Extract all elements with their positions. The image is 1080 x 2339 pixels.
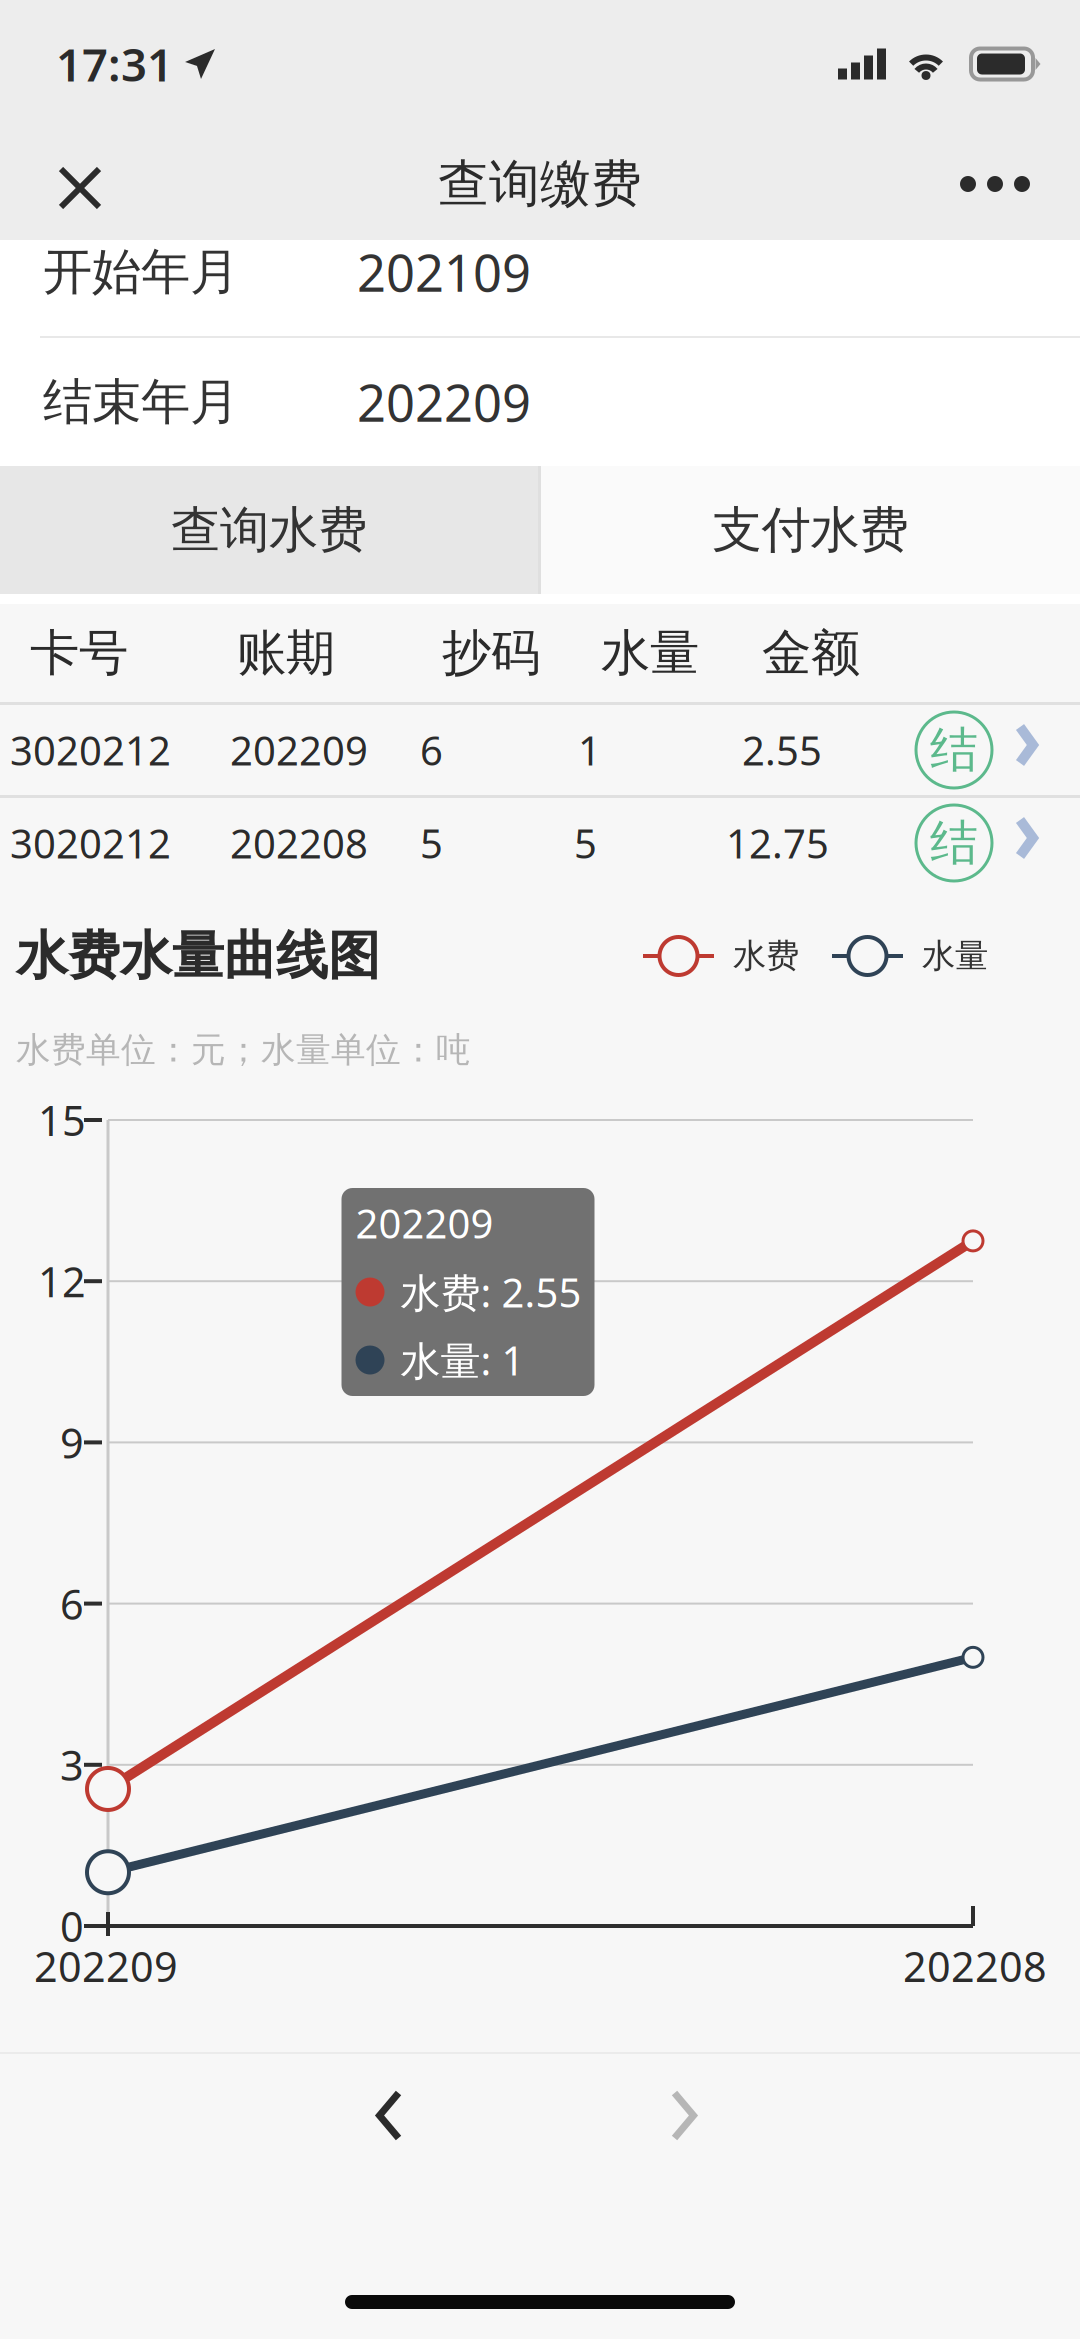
staticText: 2.55	[742, 723, 822, 776]
staticText: 15	[38, 1093, 86, 1147]
staticText: 账期	[237, 623, 335, 683]
staticText: 1	[578, 723, 601, 776]
button[interactable]: 支付水费	[541, 466, 1080, 594]
staticText: 0	[60, 1899, 84, 1953]
staticText: 水量: 1	[400, 1333, 524, 1386]
staticText: 6	[420, 723, 443, 776]
staticText: 12	[38, 1254, 86, 1309]
staticText: 水量	[601, 623, 699, 683]
staticText: 水量	[922, 935, 988, 976]
staticText: 9	[60, 1415, 84, 1470]
staticText: 12.75	[726, 816, 829, 869]
staticText: 水费水量曲线图	[16, 924, 380, 988]
staticText: 202109	[357, 238, 531, 306]
staticText: 202209	[357, 368, 531, 436]
button[interactable]: 3020212	[0, 798, 1080, 888]
staticText: 水费: 2.55	[400, 1265, 581, 1318]
staticText: 结束年月	[43, 372, 239, 432]
staticText: 5	[574, 816, 597, 869]
button[interactable]: 查询水费	[0, 466, 538, 594]
button[interactable]: More options	[924, 130, 1080, 238]
staticText: 卡号	[30, 623, 128, 683]
staticText: 金额	[762, 623, 860, 683]
staticText: 3	[60, 1737, 84, 1792]
staticText: 202208	[230, 816, 368, 869]
staticText: 抄码	[442, 623, 540, 683]
staticText: 查询水费	[171, 500, 367, 560]
staticText: 202209	[34, 1939, 178, 1993]
staticText: 3020212	[10, 723, 171, 776]
staticText: 202209	[230, 723, 368, 776]
staticText: 6	[60, 1576, 84, 1631]
staticText: 查询缴费	[438, 153, 642, 215]
staticText: 水费	[733, 935, 799, 976]
staticText: 水费单位：元；水量单位：吨	[16, 1029, 471, 1071]
staticText: 17:31	[56, 34, 173, 94]
staticText: 5	[420, 816, 443, 869]
button[interactable]: 结束年月	[0, 338, 1080, 466]
button[interactable]: Next page	[643, 2061, 732, 2176]
staticText: 结	[930, 813, 978, 872]
button[interactable]: Previous page	[348, 2061, 437, 2176]
button[interactable]: Close	[0, 128, 138, 240]
staticText: 202209	[355, 1196, 493, 1249]
staticText: 结	[930, 720, 978, 779]
staticText: 开始年月	[43, 242, 239, 302]
button[interactable]: 3020212	[0, 705, 1080, 795]
staticText: 3020212	[10, 816, 171, 869]
staticText: 202208	[903, 1939, 1047, 1993]
button[interactable]: 开始年月	[0, 208, 1080, 336]
staticText: 支付水费	[712, 500, 908, 560]
